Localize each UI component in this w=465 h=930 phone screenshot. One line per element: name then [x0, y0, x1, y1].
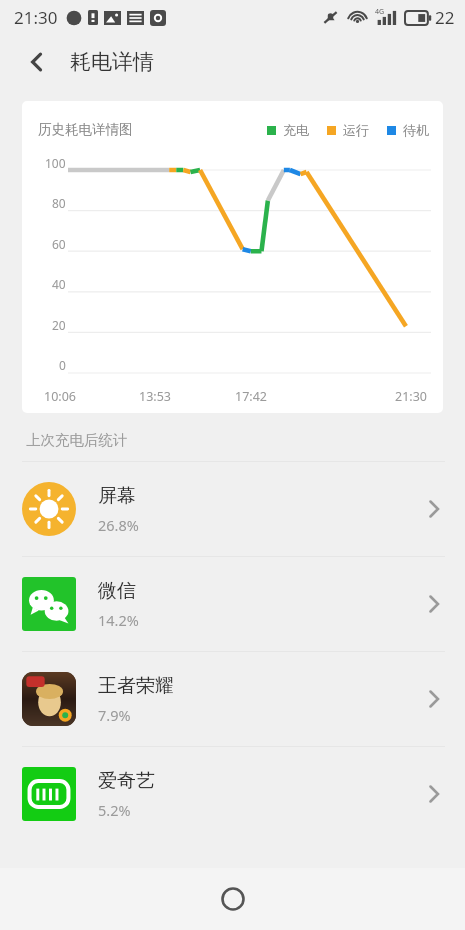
button[interactable]: Back — [14, 39, 60, 85]
staticText: 21:30 — [14, 6, 58, 29]
staticText: 耗电详情 — [70, 49, 154, 75]
staticText: 运行 — [343, 122, 369, 138]
staticText: 13:53 — [139, 388, 235, 405]
staticText: 17:42 — [235, 388, 331, 405]
staticText: 10:06 — [44, 388, 139, 405]
staticText: 上次充电后统计 — [26, 431, 128, 449]
staticText: 100 — [45, 155, 66, 171]
staticText: 26.8% — [98, 515, 139, 535]
staticText: 60 — [52, 236, 66, 252]
staticText: 屏幕 — [98, 484, 136, 508]
staticText: 20 — [52, 317, 66, 333]
staticText: 40 — [52, 276, 66, 292]
staticText: 21:30 — [331, 388, 427, 405]
staticText: 历史耗电详情图 — [38, 121, 133, 138]
staticText: 14.2% — [98, 610, 139, 630]
button[interactable]: 微信 — [0, 557, 465, 651]
staticText: 爱奇艺 — [98, 769, 155, 793]
staticText: 充电 — [283, 122, 309, 138]
staticText: 0 — [59, 357, 66, 373]
button[interactable]: 爱奇艺 — [0, 747, 465, 841]
staticText: 7.9% — [98, 705, 131, 725]
staticText: 4G — [375, 7, 385, 17]
staticText: 待机 — [403, 122, 429, 138]
staticText: 22 — [435, 6, 455, 29]
staticText: 80 — [52, 195, 66, 211]
staticText: 微信 — [98, 579, 136, 603]
button[interactable]: 王者荣耀 — [0, 652, 465, 746]
button[interactable]: 屏幕 — [0, 462, 465, 556]
staticText: 5.2% — [98, 800, 131, 820]
staticText: 王者荣耀 — [98, 674, 174, 698]
button[interactable]: Home — [210, 876, 256, 922]
